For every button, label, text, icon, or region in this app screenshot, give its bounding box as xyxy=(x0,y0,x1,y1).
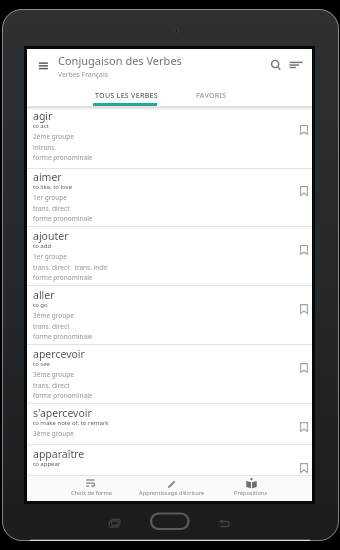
staticText: Conjugaison des Verbes xyxy=(58,53,182,68)
button[interactable]: apparaître xyxy=(27,445,312,501)
button[interactable]: Apprentissage d'écriture xyxy=(127,475,217,501)
staticText: forme pronominale xyxy=(33,332,93,341)
button[interactable]: ajouter xyxy=(27,227,312,286)
button[interactable]: aimer xyxy=(27,168,312,227)
staticText: aller xyxy=(33,288,55,302)
button[interactable]: Choix de forme xyxy=(56,475,126,501)
button[interactable]: apercevoir xyxy=(27,345,312,404)
staticText: intrans. xyxy=(33,143,57,152)
staticText: ajouter xyxy=(33,229,69,243)
staticText: trans. direct xyxy=(33,204,70,213)
button[interactable]: aller xyxy=(27,286,312,345)
button[interactable]: Prépositions xyxy=(216,475,286,501)
staticText: forme pronominale xyxy=(33,391,93,400)
staticText: forme pronominale xyxy=(33,153,93,162)
staticText: trans. direct xyxy=(33,381,70,390)
staticText: apparaître xyxy=(33,447,85,461)
staticText: 3ème groupe xyxy=(33,429,74,438)
staticText: 1er groupe xyxy=(33,252,67,261)
staticText: to act xyxy=(33,122,49,130)
staticText: to appear xyxy=(33,460,61,468)
staticText: 2ème groupe xyxy=(33,132,74,141)
staticText: to see xyxy=(33,360,50,368)
button[interactable] xyxy=(30,55,52,73)
staticText: to like, to love xyxy=(33,183,73,191)
button[interactable] xyxy=(265,54,285,74)
button[interactable]: FAVORIS xyxy=(191,88,231,106)
staticText: Prépositions xyxy=(234,489,268,497)
staticText: FAVORIS xyxy=(196,91,227,101)
staticText: forme pronominale xyxy=(33,214,93,223)
staticText: apercevoir xyxy=(33,347,85,361)
staticText: TOUS LES VERBES xyxy=(95,91,158,101)
staticText: to add xyxy=(33,242,52,250)
button[interactable]: agir xyxy=(27,107,312,169)
staticText: 1er groupe xyxy=(33,193,67,202)
staticText: forme pronominale xyxy=(33,273,93,282)
staticText: trans. direct trans. indir. xyxy=(33,263,109,272)
button[interactable]: s'apercevoir xyxy=(27,404,312,445)
staticText: aimer xyxy=(33,170,62,184)
staticText: 3ème groupe xyxy=(33,370,74,379)
staticText: agir xyxy=(33,109,53,123)
staticText: 3ème groupe xyxy=(33,311,74,320)
button[interactable]: TOUS LES VERBES xyxy=(88,88,164,106)
button[interactable] xyxy=(287,54,307,74)
staticText: Verbes Français xyxy=(58,70,108,79)
staticText: to go xyxy=(33,301,48,309)
staticText: trans. direct xyxy=(33,322,70,331)
staticText: Apprentissage d'écriture xyxy=(139,489,205,497)
staticText: to make note of, to remark xyxy=(33,419,109,427)
staticText: s'apercevoir xyxy=(33,406,92,420)
staticText: Choix de forme xyxy=(71,489,112,497)
